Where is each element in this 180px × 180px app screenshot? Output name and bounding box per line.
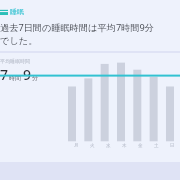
- staticText: 土: [154, 143, 159, 149]
- staticText: 分: [32, 74, 38, 82]
- staticText: 月: [74, 143, 79, 149]
- staticText: 過去7日間の睡眠時間は平均7時間9分 でした。: [0, 21, 155, 46]
- staticText: 睡眠: [10, 7, 24, 16]
- staticText: 9: [23, 65, 32, 84]
- staticText: 日: [170, 143, 175, 149]
- staticText: 平均睡眠時間: [0, 58, 30, 64]
- staticText: 7: [0, 65, 9, 84]
- staticText: 火: [90, 143, 95, 149]
- staticText: 金: [138, 143, 143, 149]
- staticText: 木: [122, 143, 127, 149]
- staticText: 水: [106, 143, 111, 149]
- button[interactable]: 平均睡眠時間: [0, 53, 180, 162]
- button[interactable]: 睡眠: [0, 0, 180, 51]
- staticText: 時間: [9, 74, 21, 82]
